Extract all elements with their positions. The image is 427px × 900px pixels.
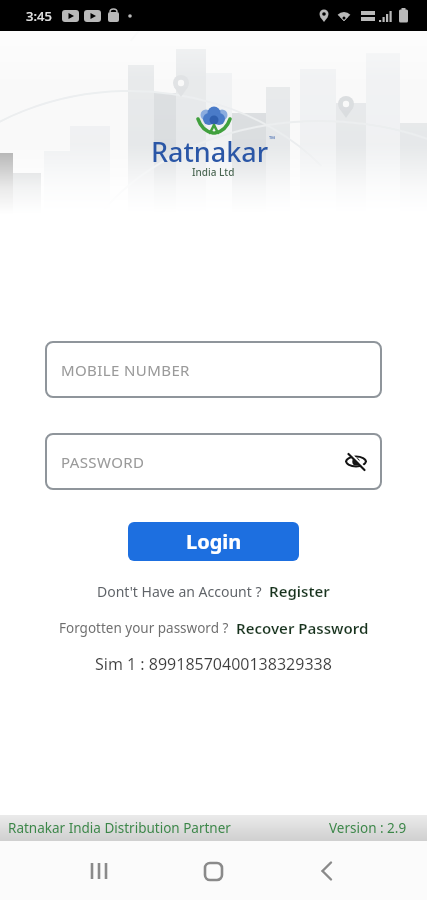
button[interactable]: Register — [269, 581, 330, 601]
button[interactable] — [191, 849, 235, 893]
staticText: Login — [186, 528, 242, 555]
staticText: India Ltd — [192, 165, 235, 179]
staticText: Register — [269, 581, 330, 601]
staticText: 3:45 — [26, 7, 52, 25]
staticText: Version : 2.9 — [329, 819, 407, 837]
staticText: Ratnakar — [151, 133, 269, 170]
button[interactable] — [305, 849, 349, 893]
staticText: Forgotten your password ? — [59, 619, 236, 637]
staticText: Sim 1 : 89918570400138329338 — [95, 653, 332, 675]
button[interactable]: Login — [128, 522, 299, 561]
button[interactable] — [78, 849, 122, 893]
staticText: PASSWORD — [61, 452, 145, 472]
button[interactable]: PASSWORD — [45, 433, 382, 490]
staticText: ™ — [269, 133, 276, 144]
staticText: Ratnakar India Distribution Partner — [8, 819, 231, 837]
staticText: MOBILE NUMBER — [61, 360, 190, 380]
staticText: Dont't Have an Account ? — [97, 582, 269, 601]
staticText: Recover Password — [236, 618, 369, 638]
button[interactable]: MOBILE NUMBER — [45, 341, 382, 398]
button[interactable]: Recover Password — [236, 618, 369, 638]
